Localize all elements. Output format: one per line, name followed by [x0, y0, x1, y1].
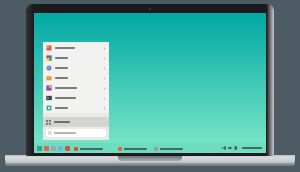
- button[interactable]: Network: [221, 145, 227, 151]
- button[interactable]: [43, 93, 109, 103]
- button[interactable]: Battery: [233, 145, 239, 151]
- button[interactable]: Launch application: [43, 145, 49, 151]
- button[interactable]: Launch application: [64, 145, 70, 151]
- button[interactable]: [43, 117, 109, 127]
- button[interactable]: Launch application: [36, 145, 42, 151]
- button[interactable]: Launch application: [50, 145, 56, 151]
- button[interactable]: [43, 53, 109, 63]
- button[interactable]: [153, 145, 183, 152]
- button[interactable]: Volume: [227, 145, 233, 151]
- button[interactable]: [46, 129, 106, 137]
- button[interactable]: [43, 73, 109, 83]
- button[interactable]: [73, 145, 103, 152]
- button[interactable]: Clock: [242, 147, 262, 149]
- button[interactable]: [117, 145, 147, 152]
- button[interactable]: [43, 103, 109, 113]
- button[interactable]: Launch application: [57, 145, 63, 151]
- button[interactable]: [43, 83, 109, 93]
- button[interactable]: [43, 63, 109, 73]
- button[interactable]: [43, 43, 109, 53]
